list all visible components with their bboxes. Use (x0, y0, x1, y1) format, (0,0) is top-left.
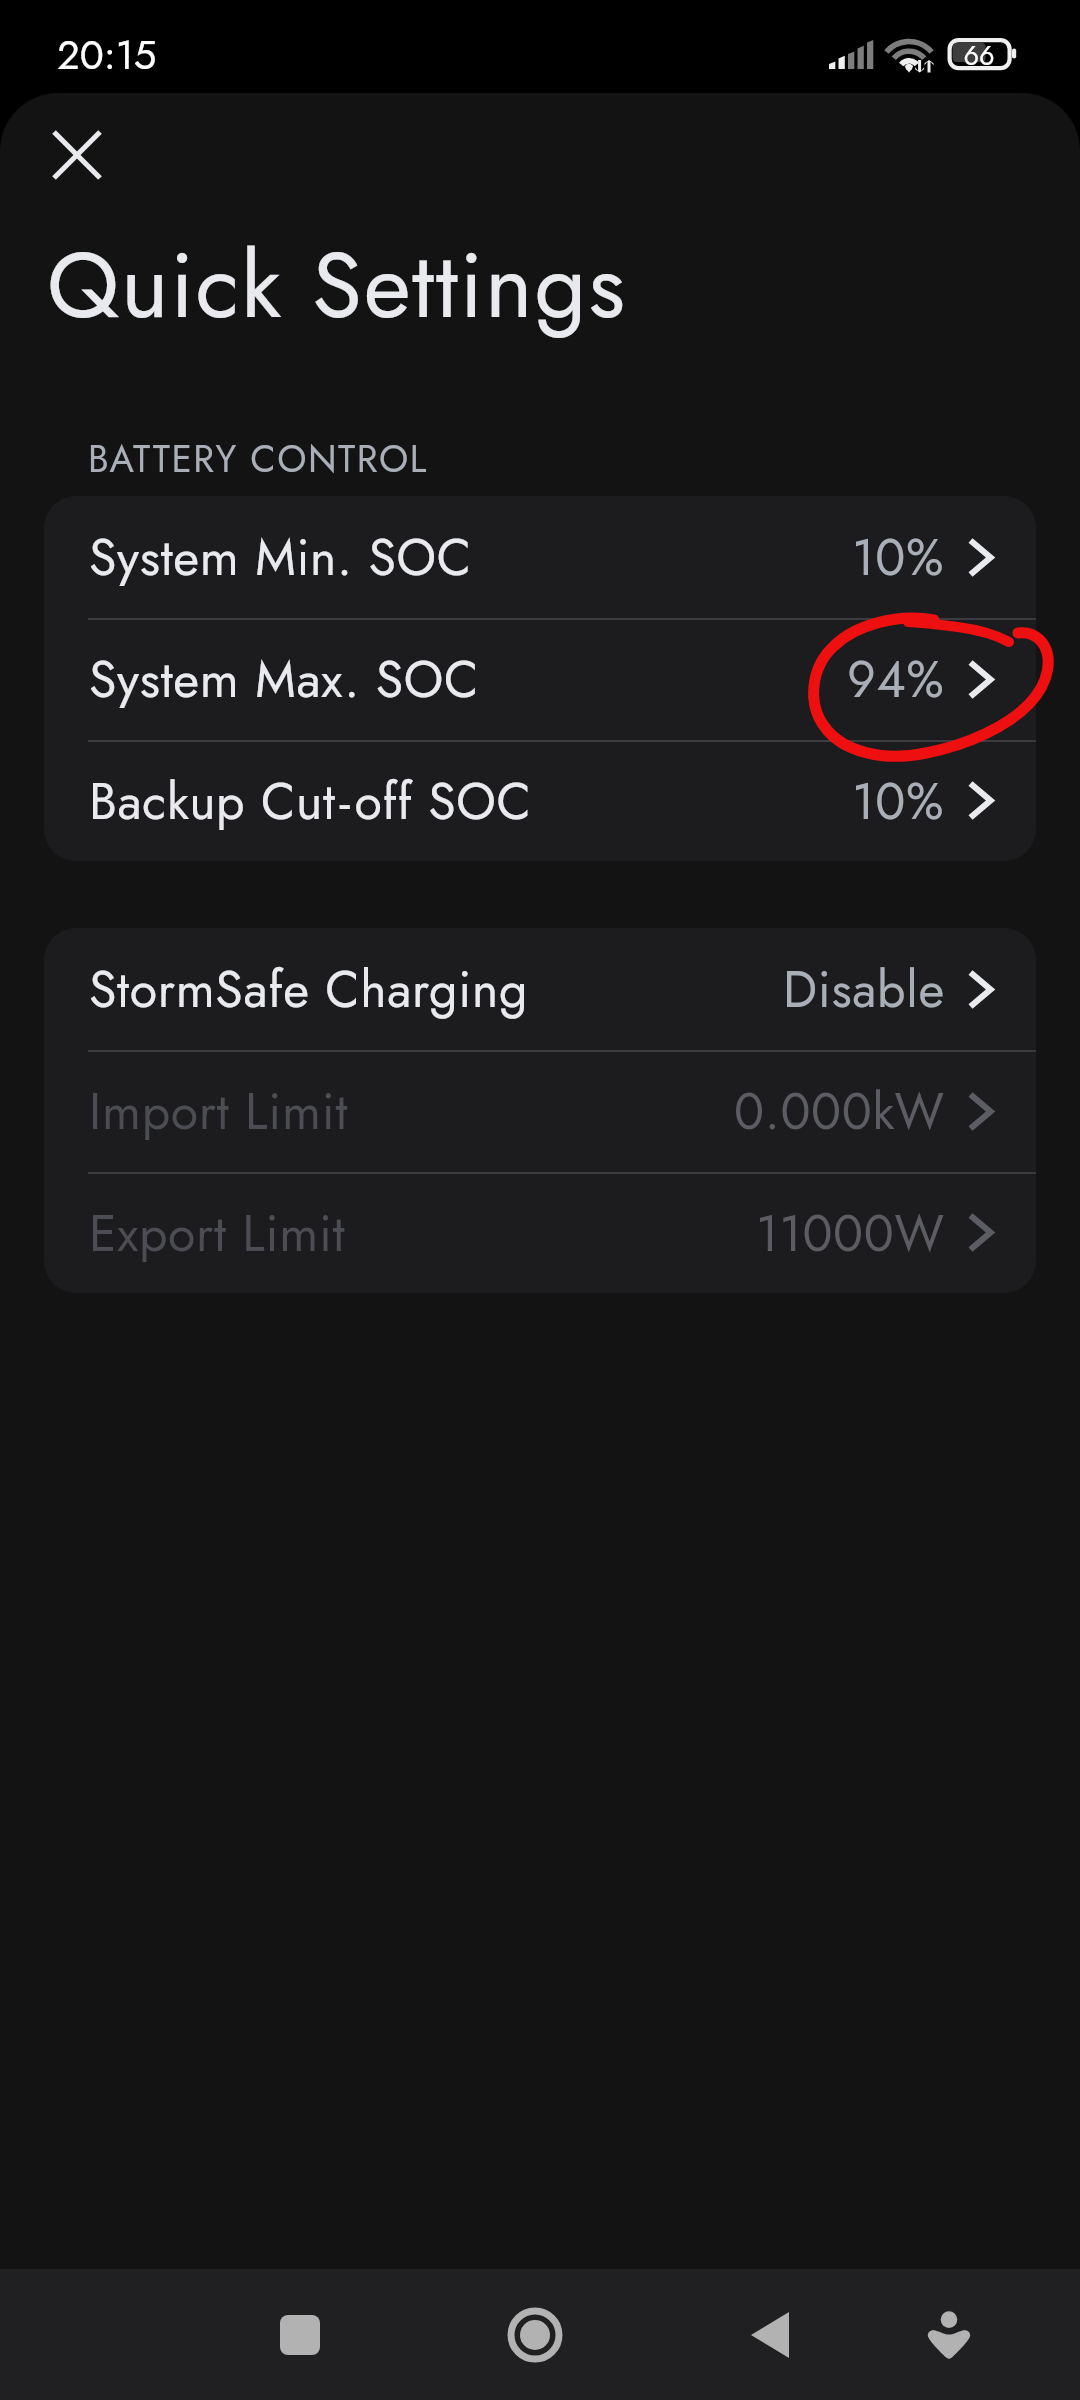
button[interactable]: Back (710, 2275, 830, 2395)
staticText: 10% (852, 765, 945, 837)
button[interactable]: Backup Cut - off SOC (44, 740, 1036, 861)
button[interactable]: System Min. SOC (44, 496, 1036, 618)
staticText: 20:15 (57, 26, 157, 84)
button[interactable]: Export Limit (44, 1172, 1036, 1293)
staticText: 66 (963, 36, 995, 72)
staticText: 10% (852, 521, 945, 593)
staticText: System Max. SOC (89, 643, 479, 715)
button[interactable]: Home (475, 2275, 595, 2395)
button[interactable]: Hide (889, 2275, 1009, 2395)
button[interactable]: Recent apps (240, 2275, 360, 2395)
staticText: Backup Cut - off SOC (89, 765, 532, 837)
staticText: System Min. SOC (89, 521, 472, 593)
button[interactable]: System Max. SOC (44, 618, 1036, 740)
staticText: StormSafe Charging (89, 953, 529, 1025)
staticText: 94% (847, 643, 945, 715)
button[interactable]: Close (21, 99, 133, 211)
staticText: Export Limit (89, 1197, 346, 1269)
staticText: Disable (783, 953, 945, 1025)
staticText: Quick Settings (47, 220, 627, 351)
staticText: BATTERY CONTROL (88, 432, 428, 485)
button[interactable]: Import Limit (44, 1050, 1036, 1172)
staticText: 11000W (756, 1197, 945, 1269)
button[interactable]: StormSafe Charging (44, 928, 1036, 1050)
staticText: 0.000kW (734, 1075, 945, 1147)
staticText: Import Limit (89, 1075, 349, 1147)
